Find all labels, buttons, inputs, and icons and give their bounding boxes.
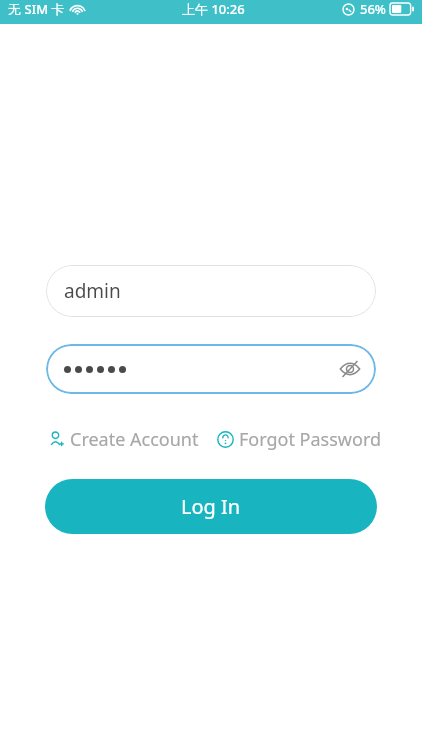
staticText: admin: [64, 278, 121, 304]
button[interactable]: Log In: [45, 479, 377, 534]
staticText: 56%: [360, 0, 386, 18]
button[interactable]: Forgot Password: [217, 427, 382, 452]
button[interactable]: Create Account: [48, 427, 199, 452]
staticText: Log In: [181, 493, 241, 520]
button[interactable]: Show password: [330, 349, 370, 389]
staticText: Create Account: [70, 427, 199, 452]
staticText: 上午 10:26: [182, 0, 245, 18]
staticText: 无 SIM 卡: [8, 0, 65, 18]
staticText: Forgot Password: [239, 427, 382, 452]
button[interactable]: admin: [46, 265, 376, 317]
button[interactable]: Show password: [46, 344, 376, 394]
